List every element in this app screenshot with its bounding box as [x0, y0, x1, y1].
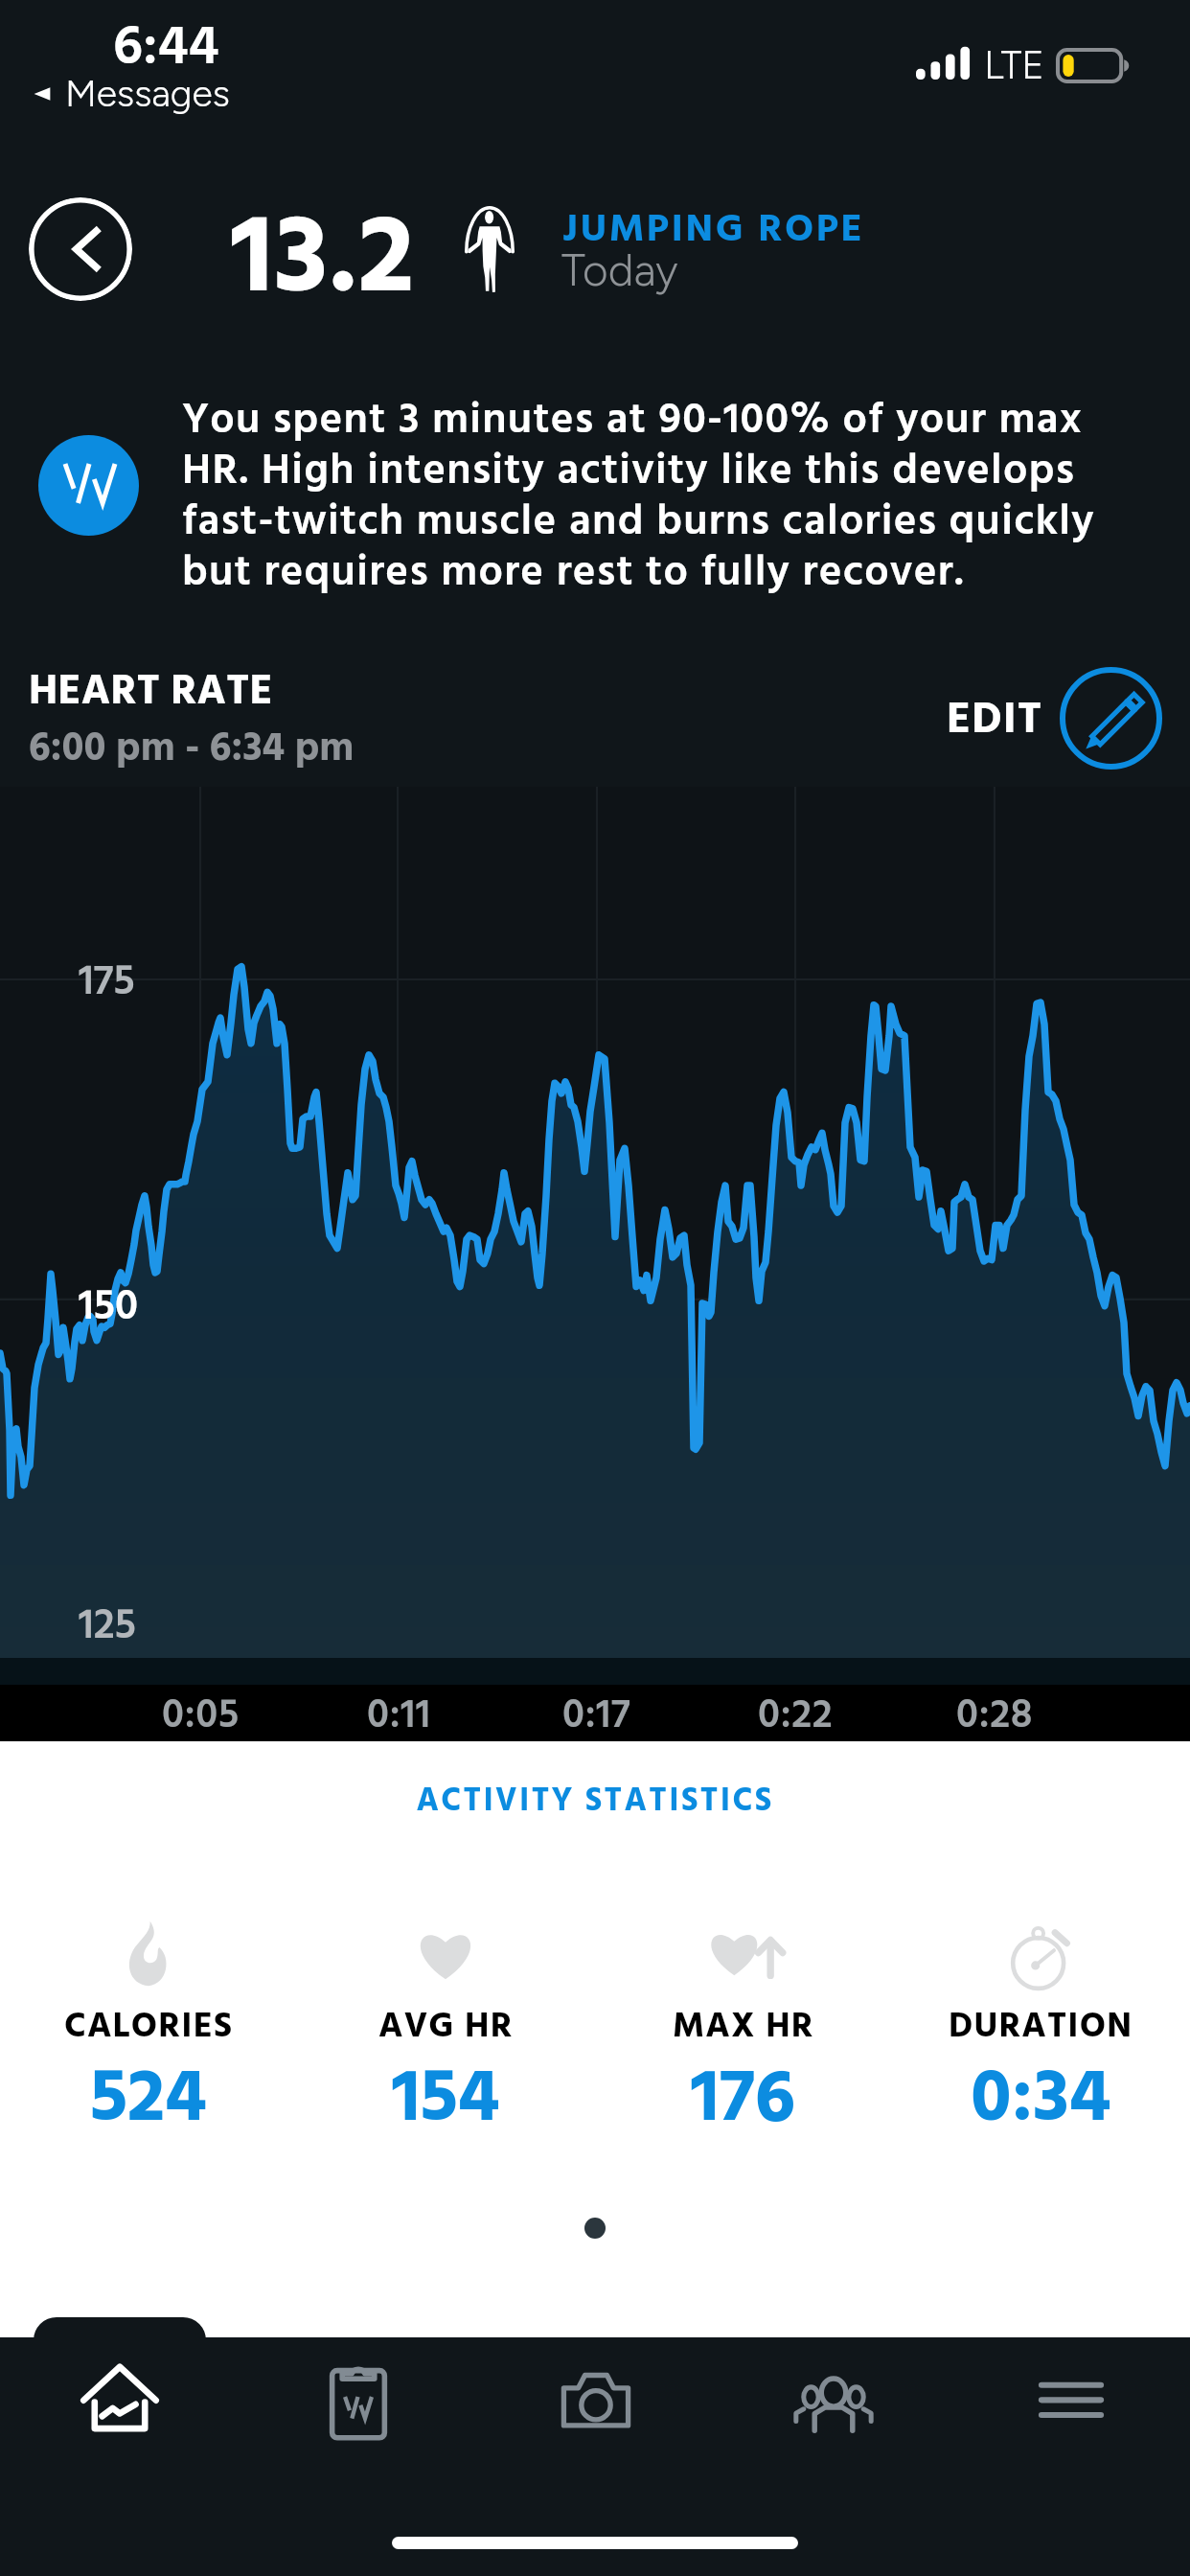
staticText: 0:17 [562, 1685, 631, 1741]
staticText: 0:05 [162, 1685, 240, 1741]
staticText: Today [561, 243, 678, 296]
button[interactable]: Home [0, 2337, 239, 2456]
staticText: 0:28 [956, 1685, 1034, 1741]
staticText: 524 [90, 2041, 207, 2161]
staticText: 175 [79, 950, 135, 1017]
staticText: Messages [65, 71, 230, 116]
button[interactable]: AVG HR [297, 1915, 594, 2175]
button[interactable]: Community [715, 2337, 952, 2456]
button[interactable]: DURATION [892, 1915, 1190, 2175]
staticText: 0:34 [971, 2041, 1111, 2161]
button[interactable]: Camera [477, 2337, 715, 2456]
button[interactable]: Back [29, 197, 132, 301]
staticText: You spent 3 minutes at 90-100% of your m… [182, 387, 1140, 608]
staticText: 0:22 [758, 1685, 834, 1741]
staticText: 176 [691, 2041, 795, 2161]
staticText: 150 [79, 1275, 138, 1342]
staticText: EDIT [947, 685, 1043, 756]
staticText: 13.2 [231, 173, 416, 327]
staticText: CALORIES [64, 1999, 234, 2056]
staticText: 125 [79, 1594, 136, 1661]
staticText: HEART RATE [29, 659, 273, 726]
staticText: JUMPING ROPE [562, 199, 865, 263]
button[interactable]: MAX HR [594, 1915, 892, 2175]
button[interactable]: Journal [239, 2337, 477, 2456]
staticText: MAX HR [673, 1999, 814, 2056]
staticText: 6:00 pm - 6:34 pm [29, 718, 355, 782]
staticText: DURATION [949, 1999, 1133, 2056]
staticText: LTE [984, 42, 1045, 88]
button[interactable]: Menu [952, 2337, 1190, 2456]
staticText: 6:44 [113, 5, 219, 94]
staticText: 154 [392, 2041, 500, 2161]
staticText: ACTIVITY STATISTICS [0, 1776, 1190, 1828]
staticText: AVG HR [378, 1999, 514, 2056]
staticText: 0:11 [367, 1685, 431, 1741]
button[interactable]: CALORIES [0, 1915, 297, 2175]
button[interactable]: EDIT [947, 667, 1162, 770]
